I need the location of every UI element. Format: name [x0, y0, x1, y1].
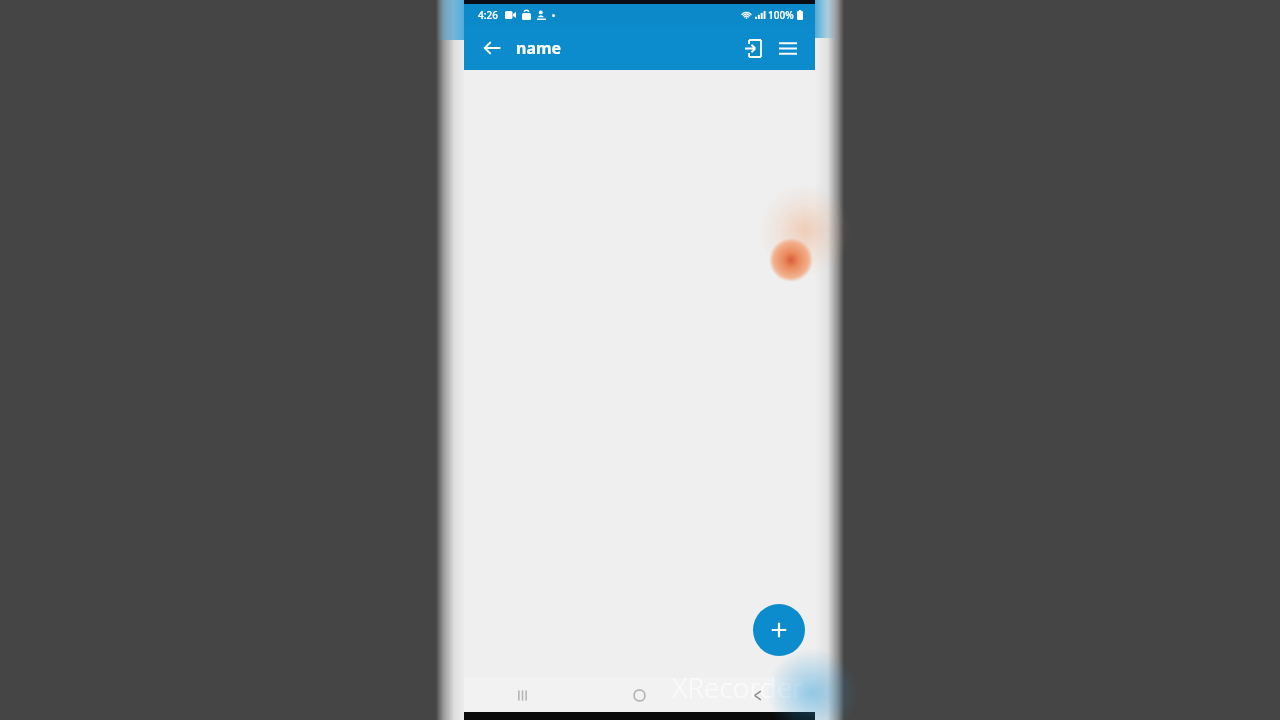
staticText: 100%: [768, 8, 794, 22]
button[interactable]: Back: [476, 32, 508, 64]
button[interactable]: Recents: [464, 678, 581, 712]
button[interactable]: Add: [753, 604, 805, 656]
staticText: 4:26: [478, 8, 498, 22]
staticText: name: [516, 37, 562, 59]
button[interactable]: Menu: [771, 31, 805, 65]
staticText: XRecorder: [672, 668, 804, 706]
button[interactable]: Home: [581, 678, 698, 712]
button[interactable]: Back: [698, 678, 815, 712]
button[interactable]: Login: [735, 31, 769, 65]
